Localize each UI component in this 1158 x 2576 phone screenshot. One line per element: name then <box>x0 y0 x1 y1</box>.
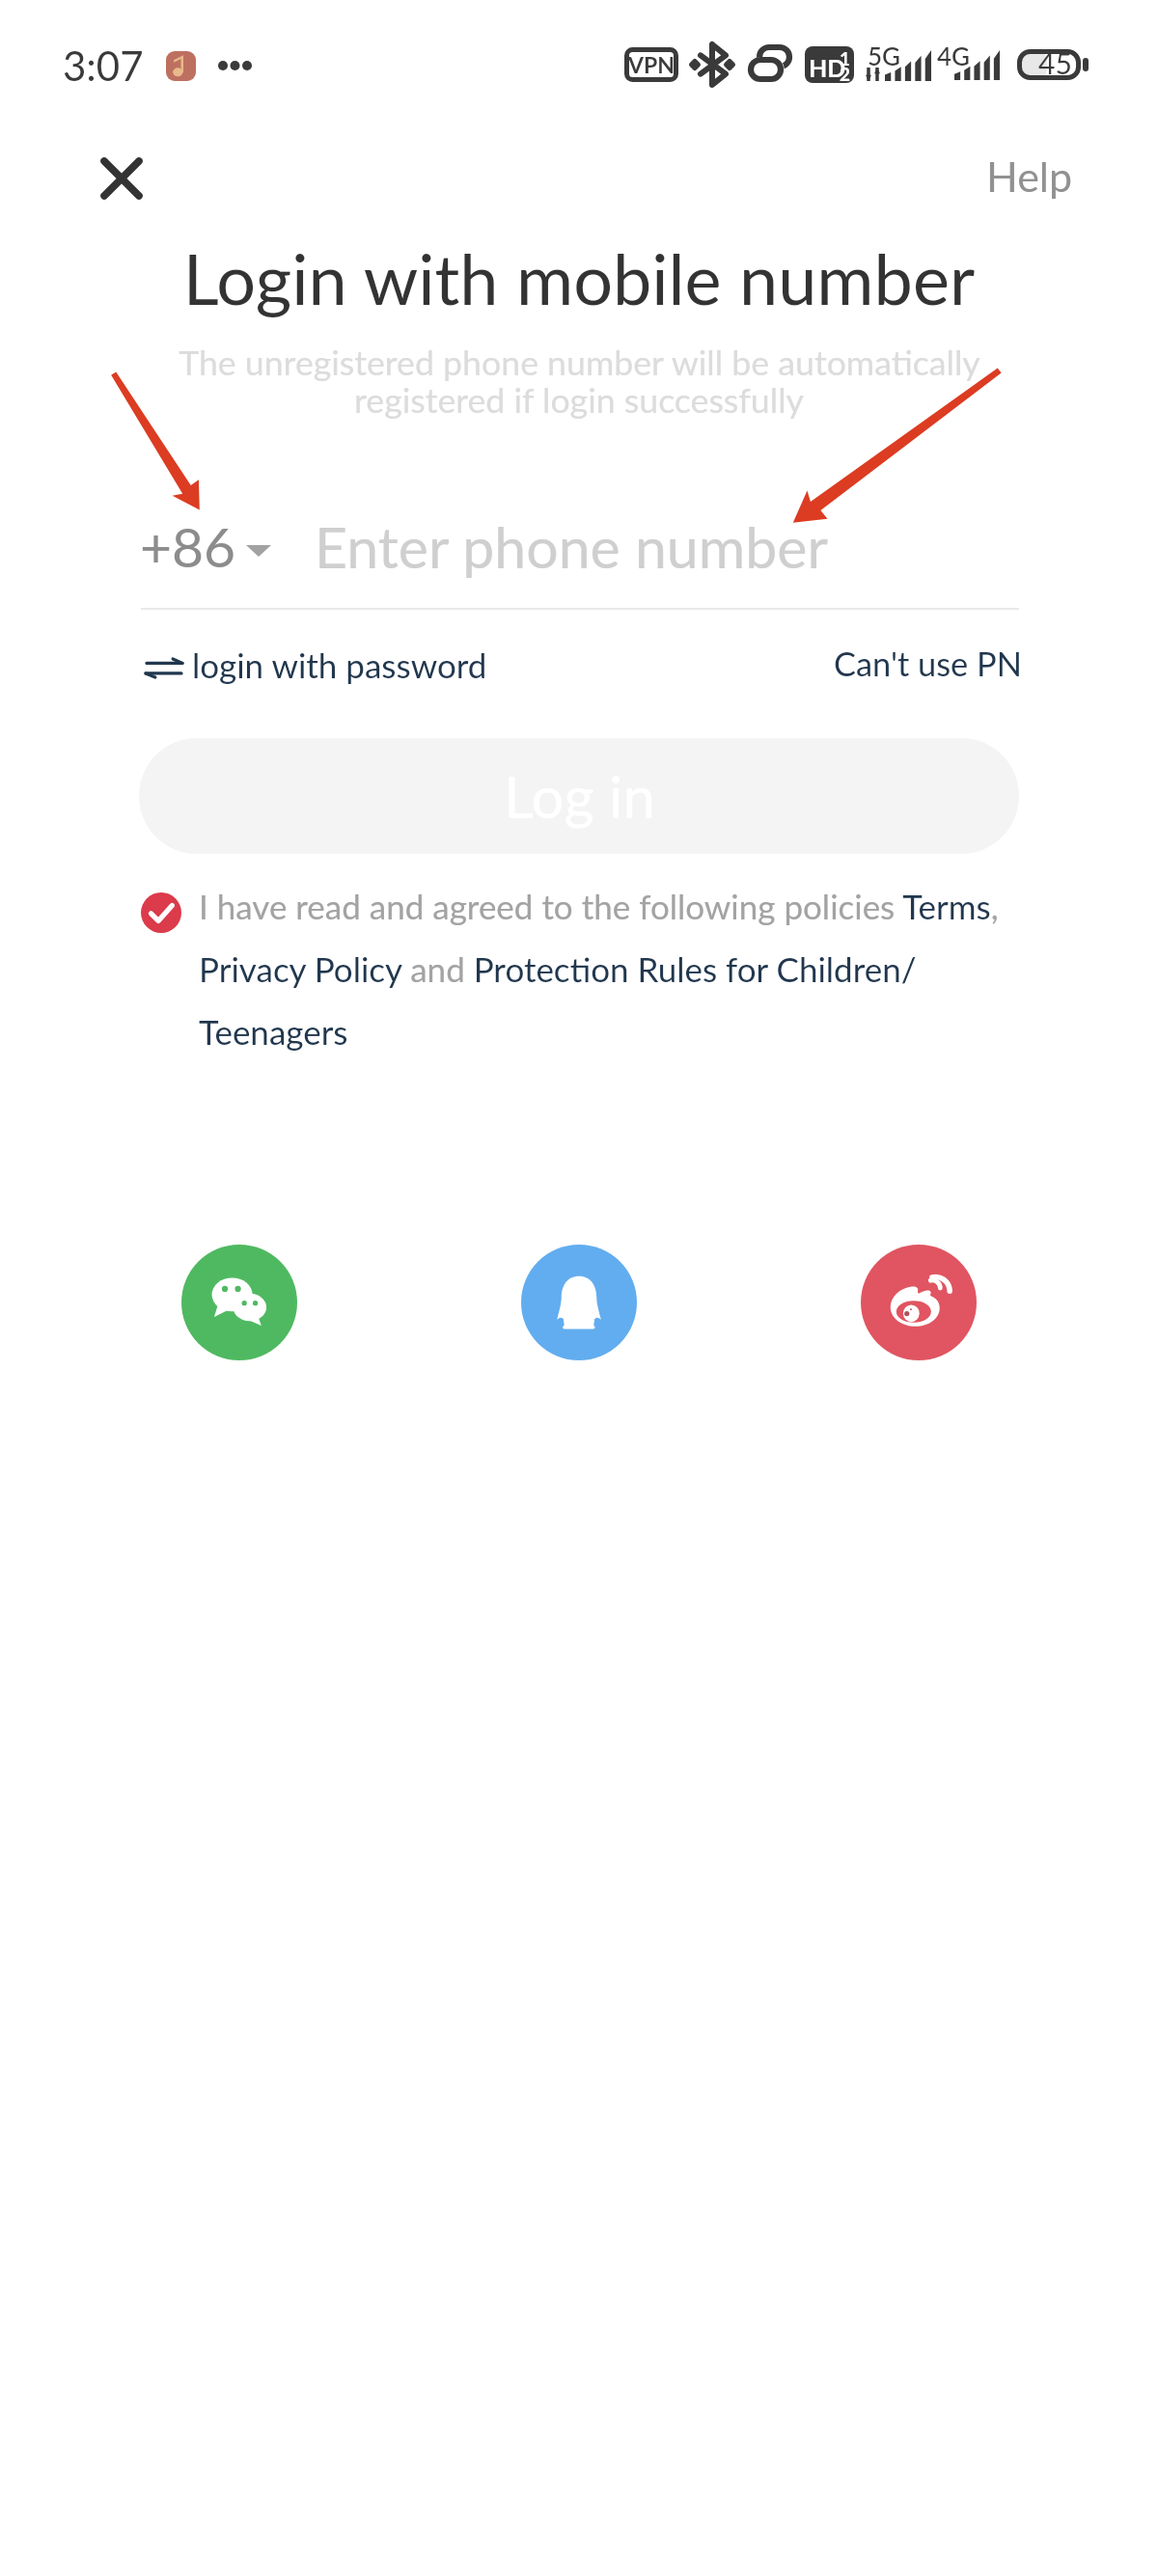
staticText: I have read and agreed to the following … <box>199 886 1011 1052</box>
button[interactable]: Close <box>77 134 166 223</box>
staticText: 5G <box>868 41 901 70</box>
button[interactable]: Weibo login <box>861 1245 977 1360</box>
staticText: The unregistered phone number will be au… <box>145 342 1013 421</box>
staticText: Log in <box>504 761 655 831</box>
staticText: HD <box>809 53 846 82</box>
staticText: VPN <box>628 51 675 78</box>
staticText: Enter phone number <box>315 512 828 581</box>
staticText: Login with mobile number <box>0 236 1158 319</box>
staticText: 3:07 <box>63 41 144 90</box>
staticText: 45 <box>1038 45 1072 76</box>
button[interactable]: Agree to policies <box>141 892 181 933</box>
staticText: Help <box>986 151 1073 202</box>
button[interactable]: WeChat login <box>181 1245 297 1360</box>
staticText: 2 <box>840 63 851 83</box>
staticText: Can't use PN <box>834 644 1022 683</box>
staticText: login with password <box>192 644 487 685</box>
staticText: 4G <box>937 41 971 70</box>
staticText: +86 <box>140 513 236 579</box>
staticText: 1 <box>840 47 851 69</box>
button[interactable]: login with password <box>141 644 487 685</box>
button[interactable]: Help <box>963 138 1096 215</box>
button[interactable]: Can't use PN <box>834 644 1022 683</box>
button[interactable]: +86 <box>140 513 275 579</box>
button[interactable]: QQ login <box>521 1245 637 1360</box>
